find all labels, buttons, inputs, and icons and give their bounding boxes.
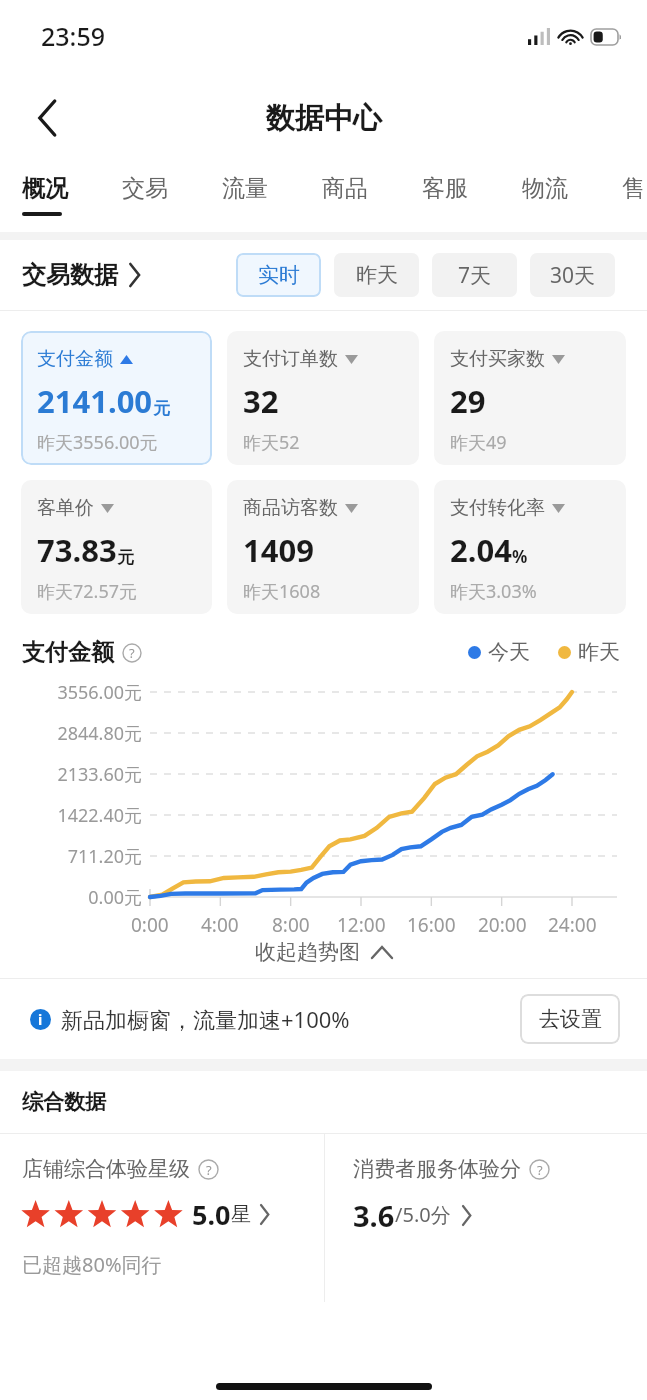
staticText: 元 — [117, 547, 134, 568]
staticText: 2133.60元 — [57, 762, 142, 787]
staticText: 客单价 — [37, 496, 94, 520]
staticText: 16:00 — [407, 912, 456, 938]
staticText: 2844.80元 — [57, 721, 142, 746]
button[interactable]: 交易 — [100, 164, 200, 232]
button[interactable]: 店铺综合体验星级 — [0, 1134, 324, 1302]
staticText: 商品 — [322, 174, 368, 203]
button[interactable]: 支付订单数 — [227, 331, 419, 465]
staticText: 昨天 — [578, 639, 620, 665]
staticText: ? — [537, 1161, 543, 1179]
staticText: 支付订单数 — [243, 347, 338, 371]
staticText: 7天 — [458, 261, 492, 290]
button[interactable]: 去设置 — [520, 994, 620, 1044]
staticText: 交易数据 — [22, 260, 118, 290]
button[interactable]: 概况 — [0, 164, 100, 232]
staticText: 2141.00 — [37, 380, 153, 422]
staticText: 1409 — [243, 529, 314, 571]
button[interactable]: Back — [20, 90, 76, 146]
button[interactable]: 物流 — [500, 164, 600, 232]
button[interactable]: 售 — [600, 164, 647, 232]
staticText: 支付金额 — [37, 347, 113, 371]
staticText: 30天 — [550, 261, 596, 290]
staticText: 已超越80%同行 — [22, 1251, 162, 1278]
button[interactable]: 支付转化率 — [434, 480, 626, 614]
button[interactable]: 支付金额 — [21, 331, 212, 465]
staticText: 昨天1608 — [243, 579, 321, 604]
staticText: 12:00 — [337, 912, 386, 938]
staticText: 星 — [231, 1202, 251, 1227]
staticText: 流量 — [222, 174, 268, 203]
staticText: 昨天49 — [450, 430, 507, 455]
staticText: 概况 — [22, 174, 68, 203]
staticText: 2.04 — [450, 529, 512, 571]
staticText: 新品加橱窗，流量加速+100% — [61, 1004, 350, 1034]
staticText: 24:00 — [548, 912, 597, 938]
staticText: 昨天3.03% — [450, 579, 537, 604]
button[interactable]: 商品 — [300, 164, 400, 232]
staticText: 商品访客数 — [243, 496, 338, 520]
staticText: 3.6 — [353, 1196, 395, 1235]
staticText: 去设置 — [539, 1006, 602, 1032]
staticText: 交易 — [122, 174, 168, 203]
staticText: 4:00 — [201, 912, 239, 938]
staticText: 29 — [450, 380, 486, 422]
staticText: ? — [206, 1161, 212, 1179]
button[interactable]: 30天 — [530, 253, 615, 297]
staticText: 昨天 — [356, 262, 398, 288]
staticText: 昨天72.57元 — [37, 579, 138, 604]
staticText: 1422.40元 — [57, 803, 142, 828]
button[interactable]: 客服 — [400, 164, 500, 232]
staticText: 20:00 — [478, 912, 527, 938]
button[interactable]: Help — [122, 643, 142, 663]
staticText: 综合数据 — [22, 1089, 106, 1115]
staticText: 物流 — [522, 174, 568, 203]
staticText: 8:00 — [272, 912, 310, 938]
button[interactable]: 客单价 — [21, 480, 212, 614]
staticText: 消费者服务体验分 — [353, 1156, 521, 1182]
button[interactable]: 消费者服务体验分 — [325, 1134, 647, 1302]
staticText: 今天 — [488, 639, 530, 665]
button[interactable]: 收起趋势图 — [0, 926, 647, 978]
staticText: 支付转化率 — [450, 496, 545, 520]
button[interactable]: 支付买家数 — [434, 331, 626, 465]
staticText: 客服 — [422, 174, 468, 203]
staticText: 元 — [153, 398, 170, 419]
button[interactable]: 流量 — [200, 164, 300, 232]
staticText: 73.83 — [37, 529, 117, 571]
button[interactable]: 商品访客数 — [227, 480, 419, 614]
staticText: 3556.00元 — [57, 680, 142, 705]
staticText: 昨天3556.00元 — [37, 430, 158, 455]
staticText: 昨天52 — [243, 430, 300, 455]
staticText: 711.20元 — [67, 844, 142, 869]
staticText: % — [512, 545, 528, 568]
staticText: 实时 — [258, 262, 300, 288]
staticText: 支付金额 — [22, 638, 114, 667]
button[interactable]: 7天 — [432, 253, 517, 297]
staticText: 收起趋势图 — [255, 939, 360, 965]
staticText: 23:59 — [41, 19, 106, 53]
staticText: i — [38, 1010, 43, 1029]
staticText: 32 — [243, 380, 279, 422]
staticText: 0:00 — [131, 912, 169, 938]
staticText: ? — [129, 644, 135, 662]
button[interactable]: 交易数据 — [22, 260, 141, 290]
staticText: 店铺综合体验星级 — [22, 1156, 190, 1182]
staticText: 支付买家数 — [450, 347, 545, 371]
staticText: 5.0 — [192, 1196, 231, 1233]
staticText: 数据中心 — [266, 100, 382, 137]
staticText: /5.0分 — [395, 1201, 451, 1228]
button[interactable]: 昨天 — [334, 253, 419, 297]
button[interactable]: 实时 — [236, 253, 321, 297]
staticText: 0.00元 — [88, 885, 142, 910]
staticText: 售 — [622, 174, 645, 203]
